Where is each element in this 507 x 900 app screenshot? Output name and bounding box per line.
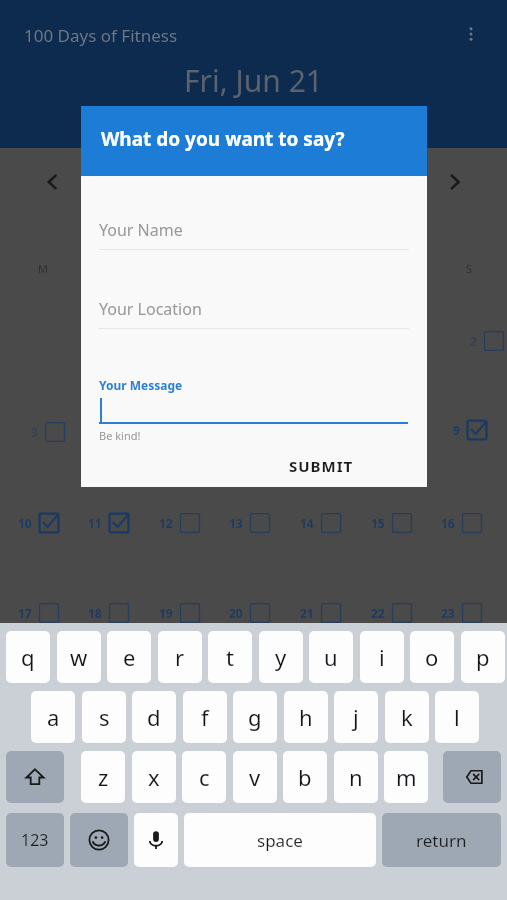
button[interactable]: 23 xyxy=(433,602,483,624)
button[interactable]: a xyxy=(31,691,75,743)
button[interactable]: 19 xyxy=(151,602,201,624)
button[interactable]: 20 xyxy=(221,602,271,624)
staticText: Fri, Jun 21 xyxy=(0,60,507,101)
button[interactable] xyxy=(99,212,409,252)
button[interactable]: w xyxy=(57,631,101,683)
button[interactable]: y xyxy=(259,631,303,683)
button[interactable]: e xyxy=(107,631,151,683)
button[interactable]: x xyxy=(132,751,176,803)
staticText: return xyxy=(416,829,467,852)
button[interactable]: p xyxy=(461,631,505,683)
button[interactable]: s xyxy=(82,691,126,743)
staticText: 13 xyxy=(229,515,243,531)
button[interactable]: return xyxy=(382,813,501,867)
staticText: r xyxy=(175,642,185,672)
staticText: z xyxy=(98,762,109,792)
staticText: 9 xyxy=(453,422,460,438)
button[interactable]: d xyxy=(132,691,176,743)
staticText: 3 xyxy=(31,424,38,440)
button[interactable]: m xyxy=(384,751,428,803)
staticText: space xyxy=(257,829,303,852)
staticText: Be kind! xyxy=(99,428,141,443)
button[interactable]: 123 xyxy=(6,813,64,867)
staticText: 19 xyxy=(159,605,173,621)
staticText: u xyxy=(324,642,338,672)
staticText: q xyxy=(21,642,35,672)
staticText: 100 Days of Fitness xyxy=(24,24,178,47)
staticText: 14 xyxy=(300,515,314,531)
staticText: What do you want to say? xyxy=(101,126,345,152)
staticText: Your Name xyxy=(99,219,183,241)
staticText: i xyxy=(379,642,385,672)
staticText: m xyxy=(396,762,417,792)
button[interactable]: t xyxy=(208,631,252,683)
staticText: g xyxy=(248,702,262,732)
button[interactable]: 2 xyxy=(455,330,505,352)
staticText: b xyxy=(298,762,312,792)
button[interactable]: 10 xyxy=(10,512,60,534)
button[interactable]: 17 xyxy=(10,602,60,624)
staticText: e xyxy=(123,642,136,672)
staticText: l xyxy=(454,702,460,732)
staticText: o xyxy=(425,642,439,672)
staticText: S xyxy=(466,261,473,276)
button[interactable]: Next xyxy=(433,160,477,204)
button[interactable]: 3 xyxy=(16,421,66,443)
button[interactable]: c xyxy=(182,751,226,803)
button[interactable]: More options xyxy=(455,18,487,50)
staticText: M xyxy=(38,261,48,276)
button[interactable]: 18 xyxy=(80,602,130,624)
staticText: c xyxy=(199,762,210,792)
button[interactable]: l xyxy=(435,691,479,743)
staticText: n xyxy=(349,762,363,792)
button[interactable]: k xyxy=(385,691,429,743)
button[interactable]: z xyxy=(81,751,125,803)
button[interactable]: Emoji xyxy=(70,813,128,867)
button[interactable]: b xyxy=(283,751,327,803)
staticText: 10 xyxy=(18,515,32,531)
button[interactable]: Previous xyxy=(30,160,74,204)
button[interactable]: r xyxy=(158,631,202,683)
staticText: f xyxy=(201,702,209,732)
button[interactable]: 12 xyxy=(151,512,201,534)
staticText: 22 xyxy=(371,605,385,621)
button[interactable]: space xyxy=(184,813,376,867)
button[interactable]: f xyxy=(183,691,227,743)
button[interactable]: v xyxy=(233,751,277,803)
staticText: s xyxy=(99,702,110,732)
button[interactable]: 21 xyxy=(292,602,342,624)
button[interactable]: 16 xyxy=(433,512,483,534)
staticText: d xyxy=(147,702,161,732)
staticText: x xyxy=(148,762,160,792)
button[interactable]: i xyxy=(360,631,404,683)
button[interactable]: 14 xyxy=(292,512,342,534)
staticText: 15 xyxy=(371,515,385,531)
button[interactable]: 13 xyxy=(221,512,271,534)
button[interactable]: Voice input xyxy=(134,813,178,867)
staticText: 123 xyxy=(21,829,49,851)
button[interactable]: u xyxy=(309,631,353,683)
staticText: 11 xyxy=(88,515,102,531)
button[interactable]: 15 xyxy=(363,512,413,534)
button[interactable] xyxy=(99,291,409,331)
staticText: h xyxy=(299,702,313,732)
staticText: w xyxy=(70,642,88,672)
button[interactable]: o xyxy=(410,631,454,683)
button[interactable]: g xyxy=(233,691,277,743)
button[interactable]: 22 xyxy=(363,602,413,624)
button[interactable]: j xyxy=(334,691,378,743)
staticText: SUBMIT xyxy=(289,456,354,476)
button[interactable]: q xyxy=(6,631,50,683)
button[interactable]: n xyxy=(334,751,378,803)
button[interactable]: SUBMIT xyxy=(266,446,376,486)
button[interactable]: 9 xyxy=(438,419,488,441)
button[interactable]: 11 xyxy=(80,512,130,534)
staticText: 23 xyxy=(441,605,455,621)
staticText: Your Message xyxy=(99,377,183,393)
staticText: 21 xyxy=(300,605,314,621)
staticText: 18 xyxy=(88,605,102,621)
button[interactable]: h xyxy=(284,691,328,743)
button[interactable]: Shift xyxy=(6,751,64,803)
button[interactable]: Backspace xyxy=(443,751,501,803)
button[interactable] xyxy=(99,372,409,424)
